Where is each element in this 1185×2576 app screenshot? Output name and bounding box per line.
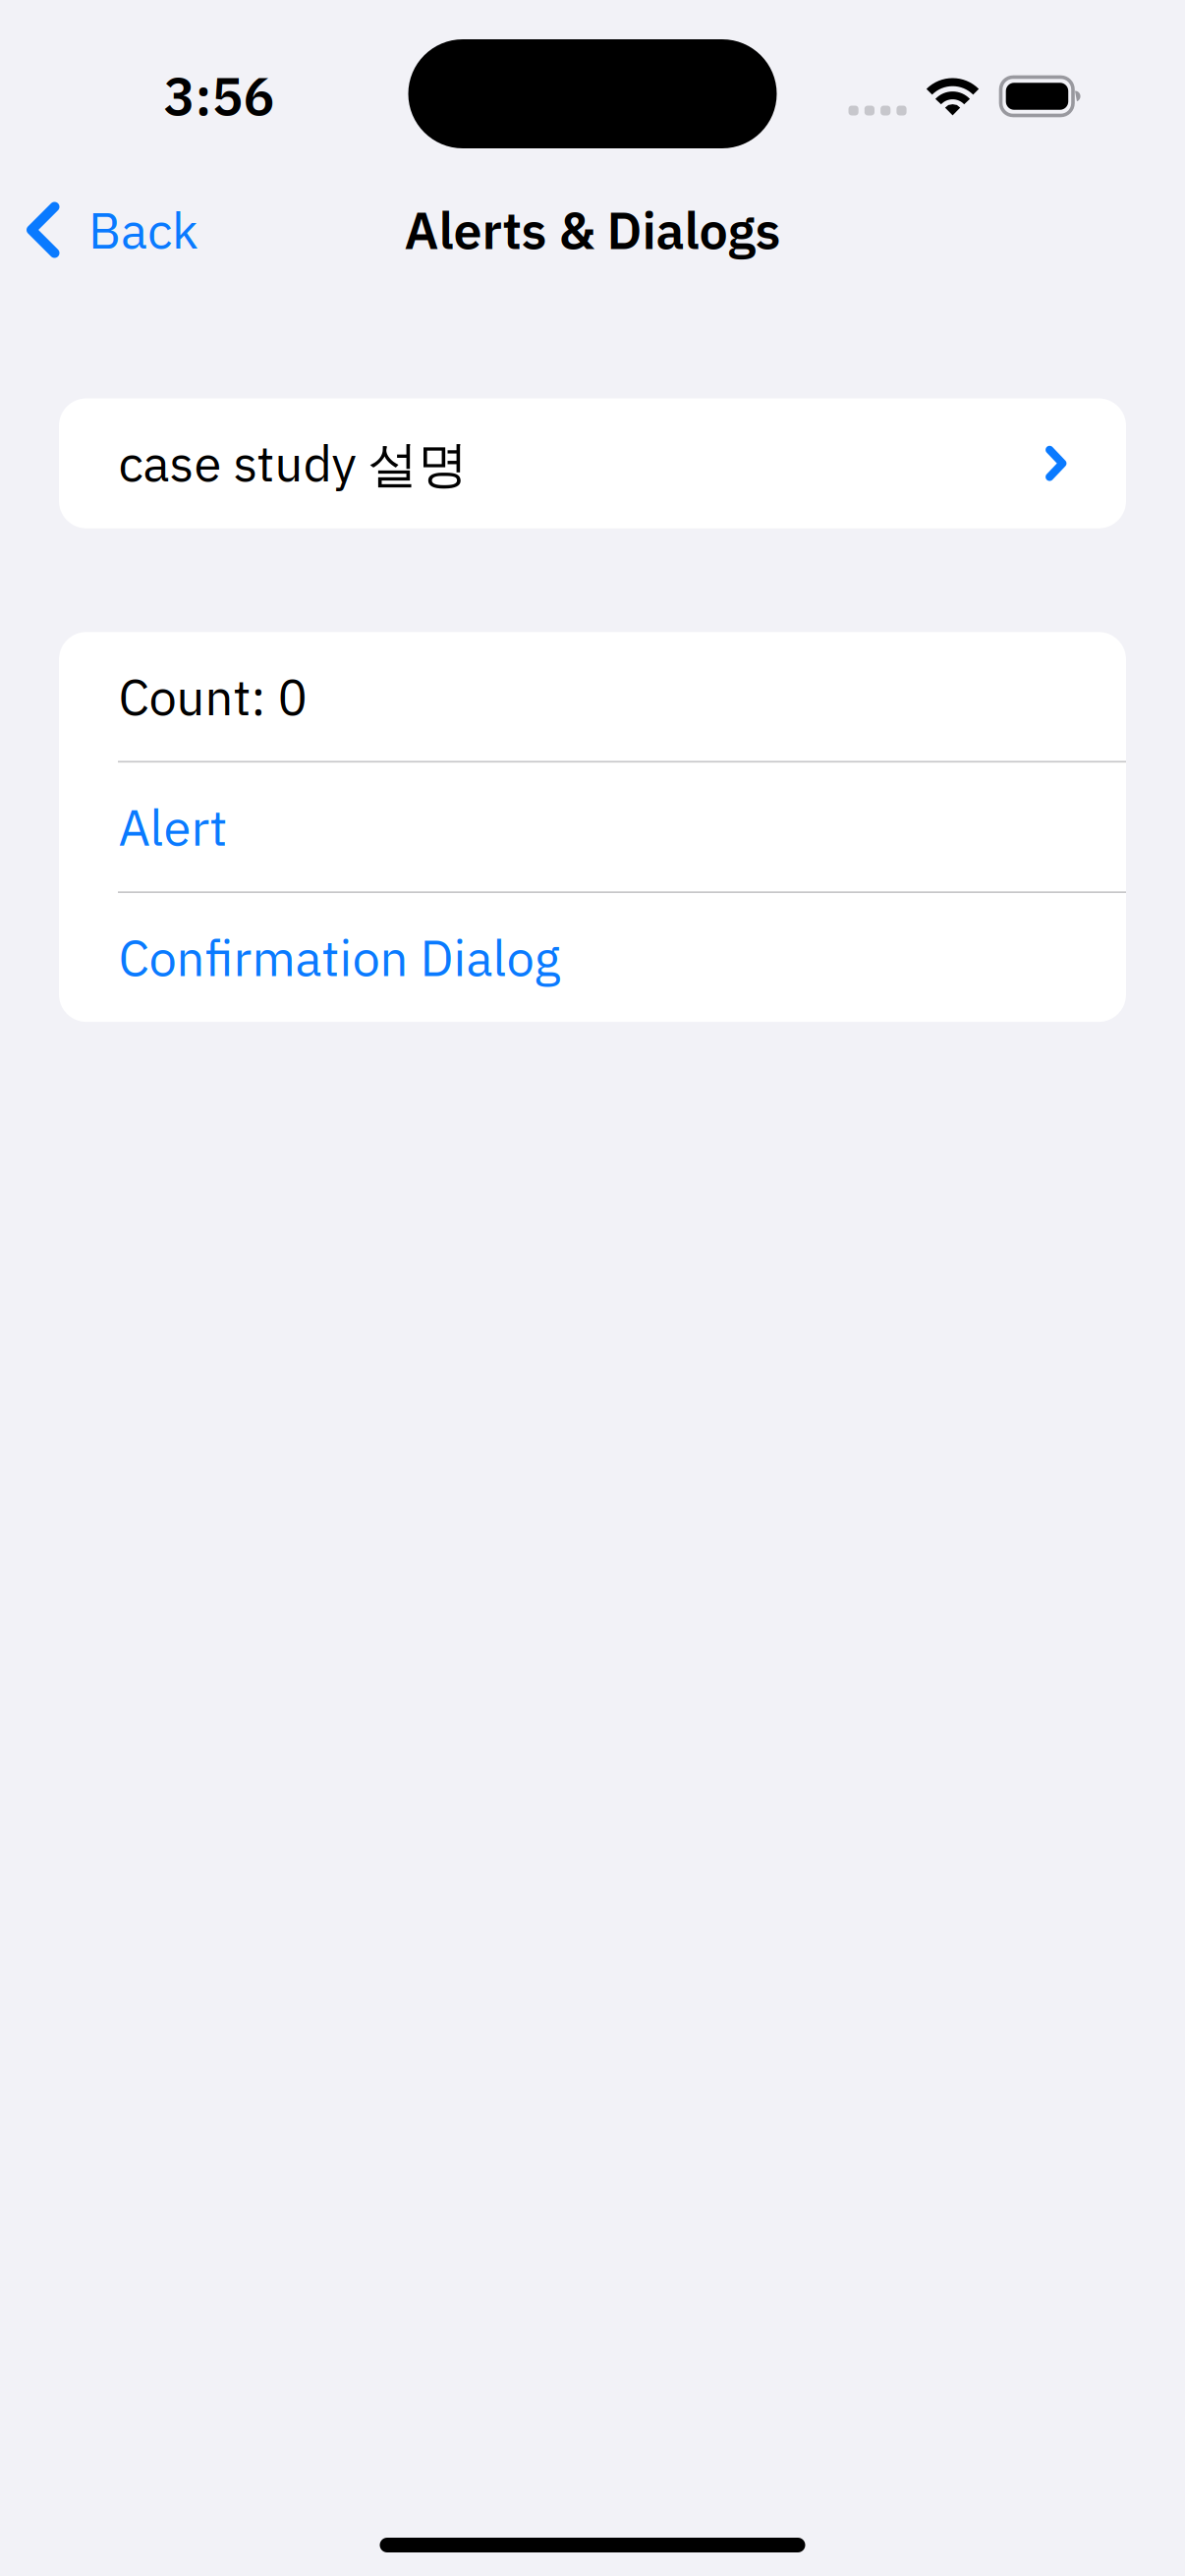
staticText: Alert bbox=[118, 795, 227, 859]
staticText: Back bbox=[88, 198, 198, 262]
staticText: 3:56 bbox=[164, 62, 275, 130]
button[interactable]: case study 설명 bbox=[59, 398, 1126, 528]
button[interactable]: Confirmation Dialog bbox=[59, 893, 1126, 1022]
staticText: Count: 0 bbox=[118, 664, 307, 729]
staticText: Confirmation Dialog bbox=[118, 925, 561, 990]
staticText: Alerts & Dialogs bbox=[404, 197, 781, 263]
button[interactable]: Alert bbox=[59, 762, 1126, 891]
button[interactable]: Back bbox=[0, 165, 224, 295]
staticText: case study 설명 bbox=[118, 431, 468, 496]
